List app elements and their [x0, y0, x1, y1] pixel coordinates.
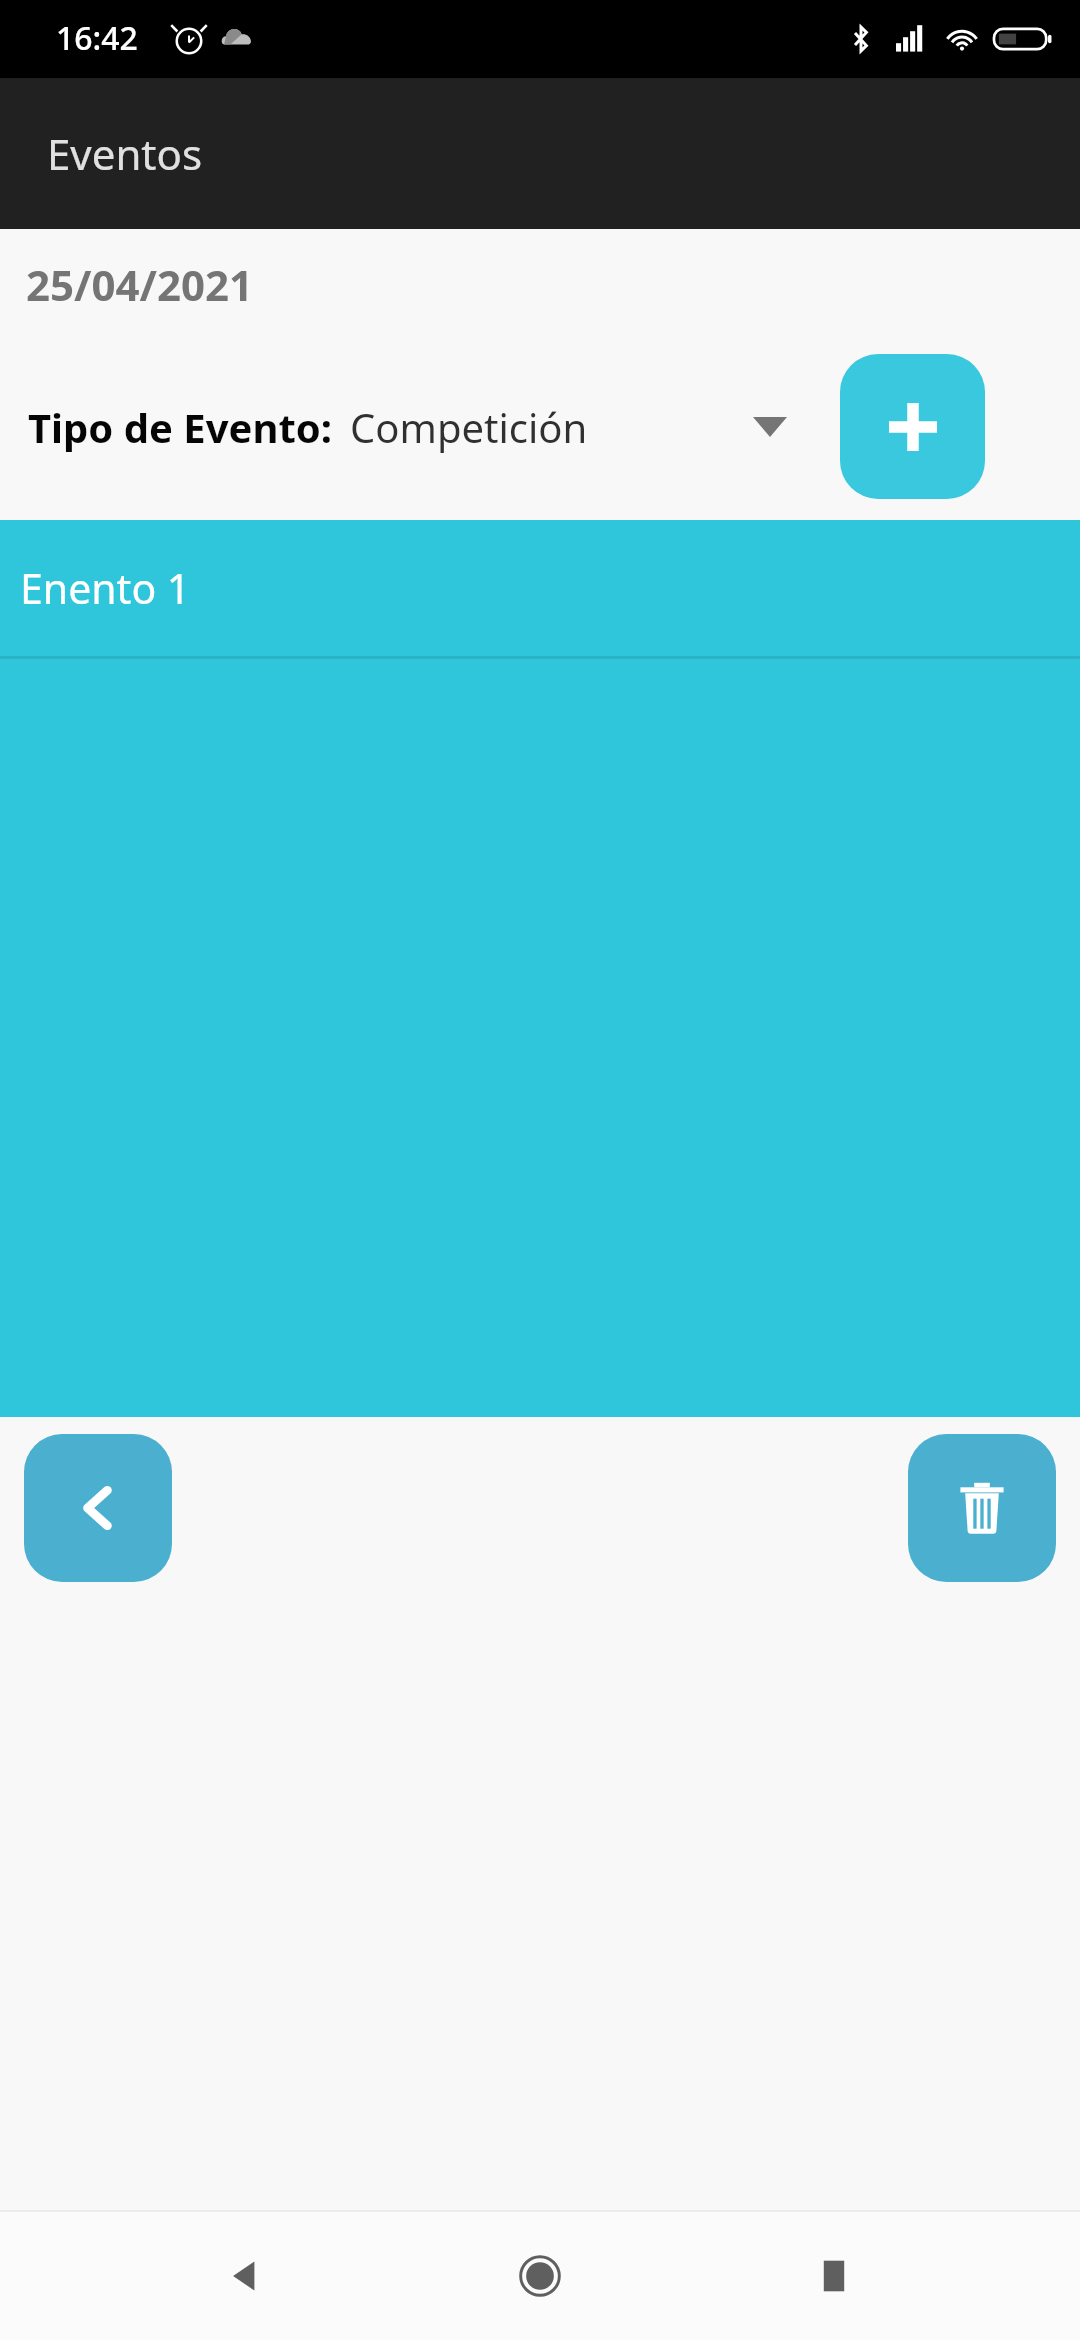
button[interactable]: Seleccionar tipo de evento: [715, 372, 825, 482]
button[interactable]: Añadir evento: [840, 354, 985, 499]
staticText: Eventos: [47, 125, 203, 182]
staticText: 16:42: [56, 16, 138, 60]
button[interactable]: Eliminar: [908, 1434, 1056, 1582]
staticText: Enento 1: [20, 560, 191, 616]
button[interactable]: Atrás: [24, 1434, 172, 1582]
button[interactable]: Enento 1: [0, 520, 1080, 656]
staticText: Competición: [350, 400, 588, 454]
staticText: Tipo de Evento:: [28, 400, 332, 454]
button[interactable]: Inicio: [492, 2228, 588, 2324]
button[interactable]: Atrás: [198, 2228, 294, 2324]
staticText: 25/04/2021: [26, 256, 254, 313]
button[interactable]: Recientes: [786, 2228, 882, 2324]
